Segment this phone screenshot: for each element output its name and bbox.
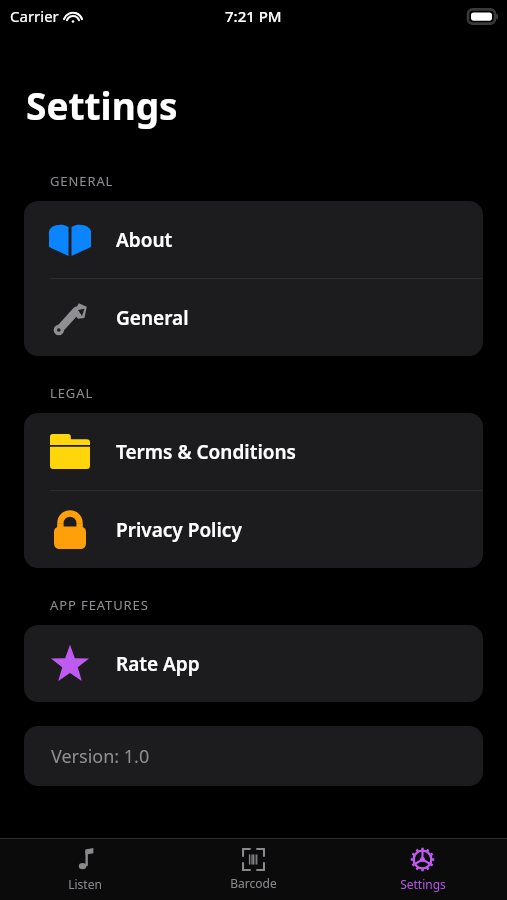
button[interactable]: General: [24, 279, 483, 356]
staticText: General: [116, 305, 189, 331]
staticText: Listen: [68, 876, 102, 892]
staticText: LEGAL: [50, 384, 94, 402]
staticText: Settings: [400, 876, 446, 892]
button[interactable]: Settings: [338, 839, 507, 900]
other: Barcode: [242, 848, 265, 871]
other: Settings: [410, 847, 435, 872]
staticText: Version: 1.0: [51, 744, 150, 769]
staticText: Rate App: [116, 651, 200, 677]
staticText: Settings: [26, 80, 178, 130]
button[interactable]: Privacy Policy: [24, 491, 483, 568]
button[interactable]: Terms & Conditions: [24, 413, 483, 491]
other: Listen: [74, 848, 96, 872]
staticText: 7:21 PM: [225, 6, 282, 26]
button[interactable]: About: [24, 201, 483, 279]
staticText: GENERAL: [50, 172, 114, 190]
staticText: Terms & Conditions: [116, 439, 296, 465]
button[interactable]: Rate App: [24, 625, 483, 702]
staticText: APP FEATURES: [50, 596, 149, 614]
staticText: Privacy Policy: [116, 517, 242, 543]
staticText: Barcode: [230, 875, 277, 891]
button[interactable]: Listen: [0, 839, 169, 900]
button[interactable]: Barcode: [169, 839, 338, 900]
staticText: Carrier: [10, 6, 59, 26]
staticText: About: [116, 227, 173, 253]
